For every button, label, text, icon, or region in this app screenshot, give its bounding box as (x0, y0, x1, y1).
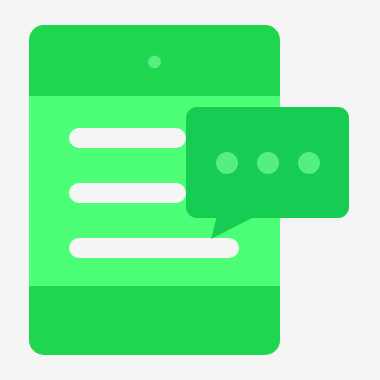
button[interactable]: Mobile messaging illustration (0, 0, 380, 380)
